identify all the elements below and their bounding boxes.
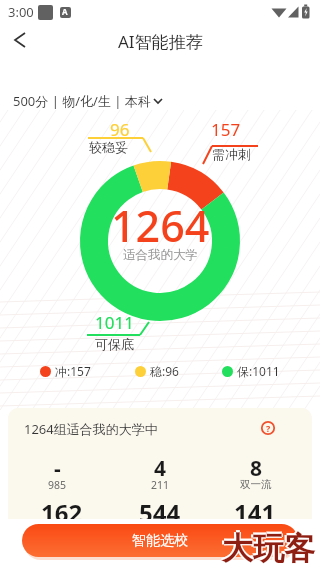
- staticText: 1011: [95, 311, 134, 334]
- staticText: 141: [234, 496, 276, 519]
- staticText: 500分 | 物/化/生 | 本科: [13, 92, 151, 110]
- button[interactable]: [6, 26, 34, 54]
- staticText: 3:00: [8, 3, 34, 21]
- staticText: ?: [266, 422, 271, 434]
- staticText: 大玩客: [223, 529, 316, 568]
- staticText: -: [54, 454, 61, 483]
- staticText: AI智能推荐: [118, 30, 203, 53]
- staticText: 大玩客: [220, 529, 313, 568]
- staticText: 544: [139, 496, 181, 519]
- button[interactable]: 冲:157: [40, 363, 91, 379]
- staticText: 157: [211, 118, 241, 141]
- staticText: 1264组适合我的大学中: [24, 420, 158, 438]
- staticText: A: [62, 6, 68, 17]
- staticText: 大玩客: [222, 529, 315, 568]
- button[interactable]: 稳:96: [135, 363, 179, 379]
- staticText: 冲:157: [55, 363, 91, 379]
- staticText: 双一流: [240, 478, 272, 491]
- staticText: 智能选校: [132, 532, 188, 550]
- staticText: 可保底: [95, 336, 134, 352]
- staticText: 稳:96: [150, 363, 179, 379]
- staticText: 985: [48, 478, 67, 492]
- staticText: 保:1011: [237, 363, 280, 379]
- staticText: 1264: [111, 196, 210, 255]
- staticText: 大玩客: [222, 527, 315, 566]
- staticText: 适合我的大学: [123, 247, 198, 263]
- button[interactable]: 智能选校: [22, 524, 298, 557]
- button[interactable]: 保:1011: [222, 363, 280, 379]
- button[interactable]: 500分 | 物/化/生 | 本科: [13, 92, 165, 110]
- staticText: 162: [41, 496, 83, 519]
- staticText: 8: [250, 454, 263, 483]
- staticText: 需冲刺: [212, 146, 251, 162]
- staticText: 211: [151, 478, 170, 492]
- button[interactable]: ?: [260, 420, 276, 436]
- staticText: 96: [110, 118, 130, 141]
- staticText: 较稳妥: [89, 139, 128, 155]
- staticText: 4: [154, 454, 167, 483]
- staticText: 大玩客: [222, 530, 315, 569]
